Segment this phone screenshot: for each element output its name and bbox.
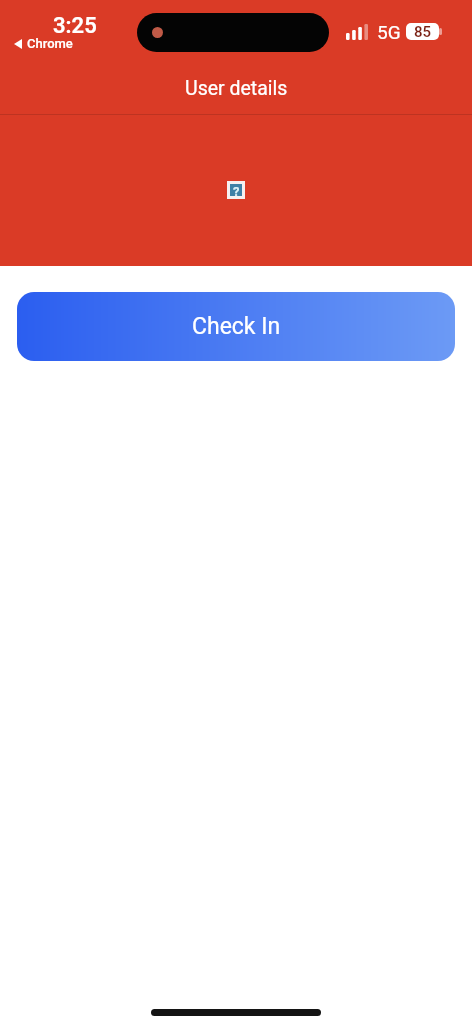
staticText: User details — [185, 77, 288, 100]
button[interactable]: Back to Chrome — [14, 36, 73, 51]
staticText: 5G — [377, 21, 401, 43]
staticText: Check In — [192, 313, 281, 340]
button[interactable]: Check In — [17, 292, 455, 361]
staticText: Chrome — [27, 36, 73, 51]
staticText: 85 — [414, 23, 432, 40]
staticText: ? — [233, 184, 240, 196]
staticText: 3:25 — [53, 13, 97, 39]
